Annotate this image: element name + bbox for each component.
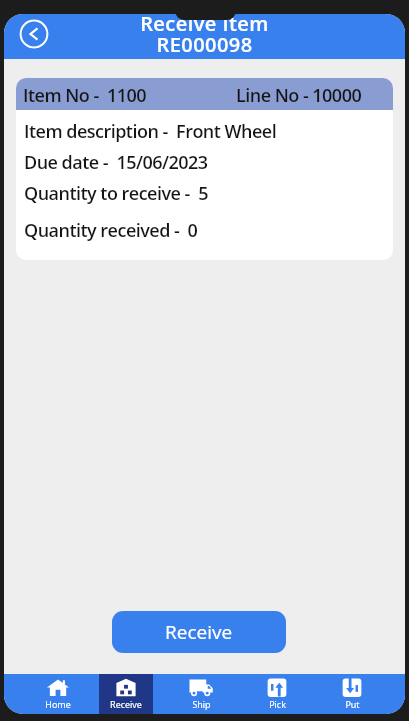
staticText: Pick (269, 698, 286, 710)
button[interactable]: Ship (174, 674, 228, 714)
staticText: Receive (165, 619, 233, 645)
button[interactable]: Put (325, 674, 379, 714)
staticText: Due date - 15/06/2023 (24, 150, 208, 175)
staticText: Put (345, 698, 360, 710)
button[interactable]: Receive (99, 674, 153, 714)
button[interactable]: Back (19, 19, 49, 49)
button[interactable]: Home (31, 674, 85, 714)
button[interactable]: Receive (112, 611, 286, 653)
staticText: Receive (110, 698, 142, 710)
staticText: Item No - 1100 (23, 83, 147, 108)
staticText: Line No - 10000 (236, 83, 362, 108)
staticText: Quantity to receive - 5 (24, 181, 208, 206)
button[interactable]: Pick (250, 674, 304, 714)
staticText: Item description - Front Wheel (24, 119, 277, 144)
staticText: Home (45, 698, 71, 710)
staticText: Quantity received - 0 (24, 218, 198, 243)
staticText: Receive Item RE000098 (140, 15, 269, 57)
staticText: Ship (192, 698, 211, 710)
